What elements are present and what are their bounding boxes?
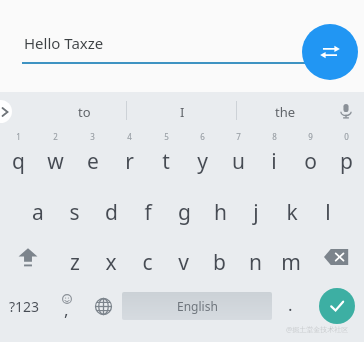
button[interactable]: 9: [292, 130, 328, 182]
staticText: a: [32, 198, 44, 227]
button[interactable]: 7: [220, 130, 256, 182]
staticText: x: [105, 248, 117, 277]
button[interactable]: Voice input: [334, 99, 358, 123]
button[interactable]: ?123: [0, 282, 48, 330]
button[interactable]: l: [310, 182, 346, 232]
button[interactable]: 5: [148, 130, 184, 182]
button[interactable]: 2: [37, 130, 74, 182]
staticText: 7: [236, 131, 241, 142]
button[interactable]: to: [78, 103, 91, 121]
staticText: @掘土堂金技术社区: [286, 325, 349, 335]
staticText: s: [69, 198, 80, 227]
staticText: z: [70, 248, 80, 277]
staticText: y: [197, 147, 208, 176]
staticText: g: [178, 198, 191, 227]
button[interactable]: 0: [328, 130, 364, 182]
staticText: e: [87, 147, 99, 176]
button[interactable]: 3: [74, 130, 111, 182]
button[interactable]: h: [202, 182, 238, 232]
staticText: English: [177, 298, 218, 314]
staticText: c: [142, 248, 153, 277]
button[interactable]: x: [93, 232, 129, 282]
staticText: l: [325, 198, 331, 227]
button[interactable]: b: [201, 232, 237, 282]
staticText: 2: [53, 131, 58, 142]
staticText: v: [178, 248, 189, 277]
staticText: w: [47, 147, 64, 176]
button[interactable]: Swap languages: [302, 24, 358, 80]
button[interactable]: Done: [319, 288, 355, 324]
button[interactable]: I: [180, 103, 185, 121]
button[interactable]: Shift: [0, 232, 56, 282]
button[interactable]: 1: [0, 130, 37, 182]
staticText: 3: [90, 131, 95, 142]
staticText: q: [12, 147, 25, 176]
staticText: p: [340, 147, 353, 176]
button[interactable]: the: [275, 103, 296, 121]
button[interactable]: v: [165, 232, 201, 282]
button[interactable]: 8: [256, 130, 292, 182]
staticText: 5: [164, 131, 169, 142]
button[interactable]: n: [237, 232, 273, 282]
staticText: f: [144, 198, 152, 227]
button[interactable]: s: [56, 182, 93, 232]
button[interactable]: f: [130, 182, 166, 232]
button[interactable]: Emoji: [48, 282, 85, 330]
button[interactable]: 4: [111, 130, 148, 182]
staticText: r: [125, 147, 134, 176]
staticText: d: [105, 198, 118, 227]
button[interactable]: Backspace: [309, 232, 364, 282]
staticText: ,: [64, 298, 69, 321]
staticText: i: [271, 147, 277, 176]
button[interactable]: Change keyboard language: [85, 282, 122, 330]
staticText: t: [162, 147, 170, 176]
button[interactable]: z: [56, 232, 93, 282]
staticText: u: [232, 147, 245, 176]
staticText: 6: [200, 131, 205, 142]
staticText: ?123: [9, 297, 40, 316]
button[interactable]: Expand suggestions: [0, 100, 12, 123]
button[interactable]: d: [93, 182, 130, 232]
button[interactable]: g: [166, 182, 202, 232]
button[interactable]: 6: [184, 130, 220, 182]
staticText: n: [249, 248, 262, 277]
staticText: m: [281, 248, 301, 277]
staticText: 0: [344, 131, 349, 142]
button[interactable]: English: [122, 292, 272, 320]
button[interactable]: m: [273, 232, 309, 282]
staticText: b: [213, 248, 226, 277]
staticText: .: [288, 293, 293, 316]
staticText: Hello Taxze: [24, 33, 104, 53]
button[interactable]: .: [272, 282, 309, 330]
staticText: j: [253, 198, 259, 227]
button[interactable]: j: [238, 182, 274, 232]
staticText: 1: [16, 131, 21, 142]
staticText: o: [304, 147, 317, 176]
staticText: 4: [127, 131, 132, 142]
staticText: 8: [272, 131, 277, 142]
button[interactable]: k: [274, 182, 310, 232]
button[interactable]: c: [129, 232, 165, 282]
button[interactable]: a: [19, 182, 56, 232]
staticText: 9: [308, 131, 313, 142]
staticText: k: [286, 198, 298, 227]
staticText: h: [214, 198, 227, 227]
